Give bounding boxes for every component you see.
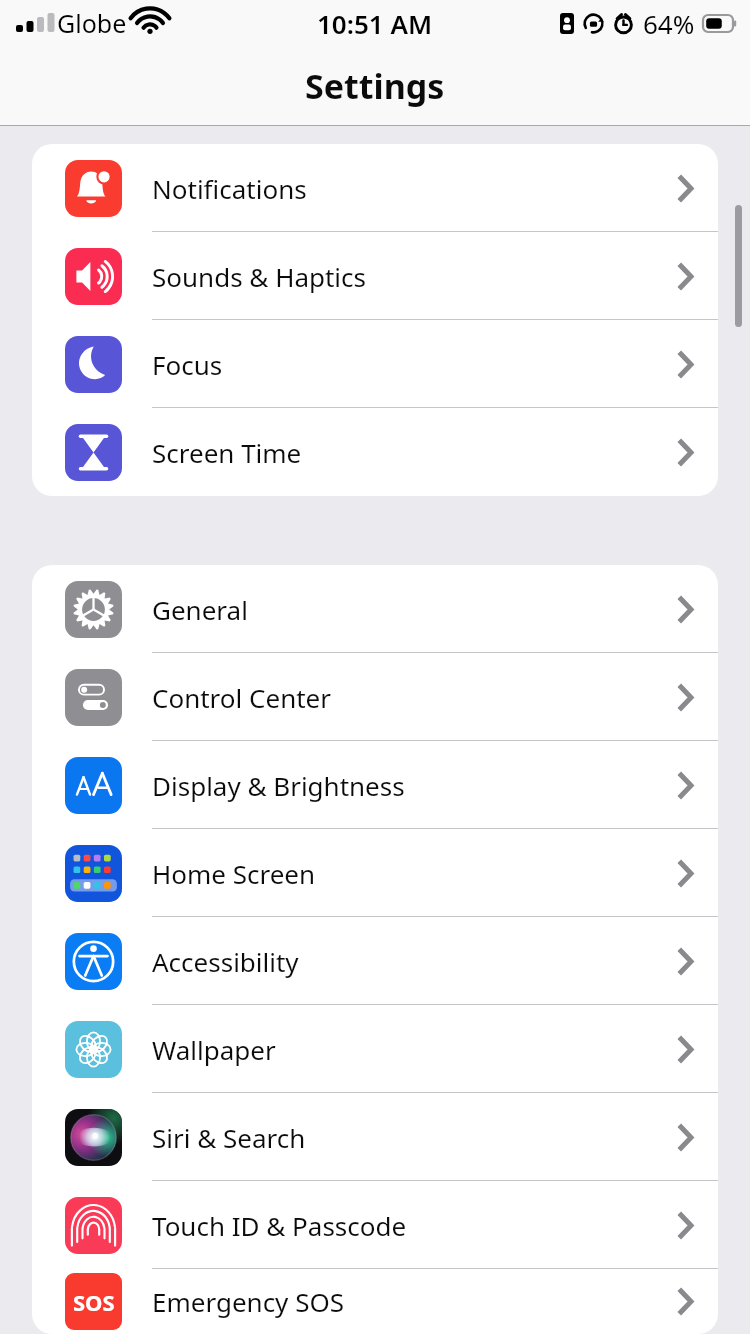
button[interactable]: Sounds & Haptics [32,232,718,320]
staticText: Sounds & Haptics [152,259,367,294]
staticText: Home Screen [152,856,316,891]
button[interactable]: Home Screen [32,829,718,917]
button[interactable]: Notifications [32,144,718,232]
staticText: Screen Time [152,435,302,470]
staticText: Wallpaper [152,1032,276,1067]
button[interactable]: Touch ID & Passcode [32,1181,718,1269]
button[interactable]: Accessibility [32,917,718,1005]
staticText: Notifications [152,171,307,206]
staticText: 10:51 AM [317,6,433,41]
staticText: Display & Brightness [152,768,405,803]
button[interactable]: Wallpaper [32,1005,718,1093]
button[interactable]: General [32,565,718,653]
button[interactable]: Control Center [32,653,718,741]
button[interactable]: Focus [32,320,718,408]
staticText: Globe [57,6,127,40]
staticText: 64% [643,6,695,41]
button[interactable]: Display & Brightness [32,741,718,829]
staticText: Focus [152,347,223,382]
staticText: Settings [305,63,445,109]
staticText: Accessibility [152,944,299,979]
staticText: Touch ID & Passcode [152,1208,407,1243]
staticText: General [152,592,248,627]
staticText: SOS [73,1287,115,1317]
staticText: Control Center [152,680,331,715]
button[interactable]: Screen Time [32,408,718,496]
staticText: Emergency SOS [152,1284,344,1319]
button[interactable]: SOS [32,1269,718,1334]
button[interactable]: Siri & Search [32,1093,718,1181]
staticText: Siri & Search [152,1120,306,1155]
